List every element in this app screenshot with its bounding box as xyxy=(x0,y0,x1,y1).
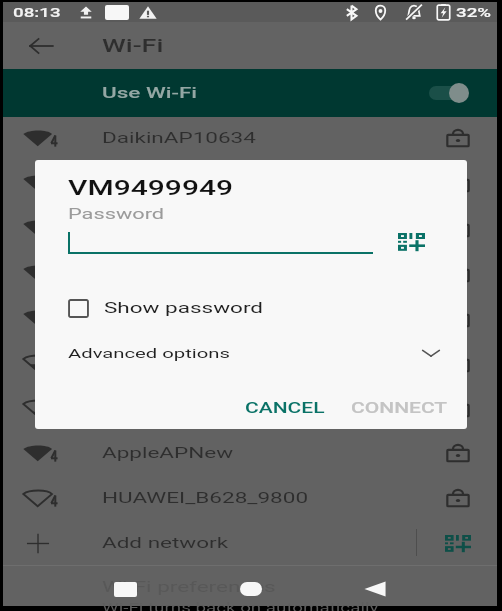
button[interactable]: PlusnetWireless xyxy=(3,385,497,430)
button[interactable]: CONNECT xyxy=(334,392,432,424)
button[interactable]: CANCEL xyxy=(228,392,315,424)
staticText: TALKTALK8F2A xyxy=(102,354,262,372)
staticText: HUAWEI_B628_9800 xyxy=(102,489,309,507)
staticText: CANCEL xyxy=(245,400,326,416)
staticText: 32% xyxy=(456,5,492,20)
staticText: CONNECT xyxy=(351,400,448,416)
staticText: Advanced options xyxy=(68,345,230,361)
staticText: Wi-Fi turns back on automatically xyxy=(102,600,379,611)
button[interactable]: Use Wi-Fi xyxy=(3,69,497,117)
button[interactable]: Scan QR code to add network xyxy=(440,528,476,558)
button[interactable]: Home xyxy=(231,569,271,609)
button[interactable]: Recent apps xyxy=(105,569,145,609)
button[interactable]: DaikinAP10634 xyxy=(3,115,497,160)
button[interactable]: TALKTALK8F2A xyxy=(3,340,497,385)
staticText: PlusnetWireless xyxy=(102,399,264,417)
button[interactable]: HUAWEI_B628_9800 xyxy=(3,475,497,520)
button[interactable]: Advanced options xyxy=(35,338,467,368)
staticText: Password xyxy=(68,206,165,223)
button[interactable]: Wi-Fi preferences xyxy=(3,565,497,611)
staticText: Wi-Fi xyxy=(102,35,163,56)
button[interactable]: BTHub6-ZK3P xyxy=(3,205,497,250)
button[interactable]: Add network xyxy=(3,520,497,565)
staticText: VM6734221 xyxy=(102,309,225,327)
button[interactable]: VM9499949 xyxy=(3,160,497,205)
staticText: AppleAPNew xyxy=(102,444,234,462)
button[interactable]: AppleAPNew xyxy=(3,430,497,475)
staticText: VM9499949 xyxy=(68,176,234,199)
button[interactable]: Show password xyxy=(35,291,467,325)
button[interactable]: Scan QR code xyxy=(390,224,432,260)
staticText: Show password xyxy=(104,299,264,317)
button[interactable]: VM6734221 xyxy=(3,295,497,340)
staticText: DaikinAP10634 xyxy=(102,129,256,147)
staticText: Use Wi-Fi xyxy=(102,84,198,102)
button[interactable]: Navigate up xyxy=(18,22,64,69)
button[interactable]: Back xyxy=(355,569,395,609)
staticText: Add network xyxy=(102,534,229,552)
staticText: 08:13 xyxy=(13,5,61,20)
staticText: Wi-Fi preferences xyxy=(102,578,276,596)
staticText: VM9499949 xyxy=(102,174,225,192)
button[interactable]: SKY9A3CE xyxy=(3,250,497,295)
